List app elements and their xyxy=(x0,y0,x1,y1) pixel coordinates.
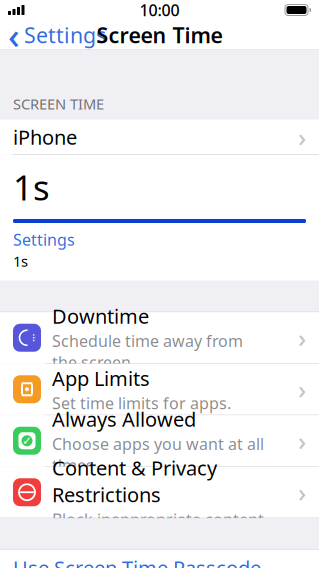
staticText: Block inappropriate content. xyxy=(52,509,268,530)
button[interactable]: Use Screen Time Passcode xyxy=(0,550,319,568)
button[interactable]: ✓ xyxy=(0,415,319,466)
button[interactable]: Downtime xyxy=(0,312,319,363)
staticText: Screen Time xyxy=(96,21,222,49)
staticText: iPhone xyxy=(13,124,77,150)
staticText: Content & Privacy Restrictions xyxy=(52,455,217,508)
staticText: Use Screen Time Passcode xyxy=(13,554,261,568)
staticText: ✓ xyxy=(22,434,32,447)
button[interactable]: ‹ xyxy=(0,7,106,63)
staticText: Set time limits for apps. xyxy=(52,392,231,414)
button[interactable]: App Limits xyxy=(0,364,319,415)
staticText: 1s xyxy=(13,251,28,271)
staticText: Downtime xyxy=(52,303,149,329)
staticText: › xyxy=(298,120,306,154)
staticText: Settings xyxy=(24,21,106,49)
staticText: 1s xyxy=(13,164,50,210)
staticText: Schedule time away from the screen. xyxy=(52,330,243,373)
staticText: 10:00 xyxy=(139,0,179,21)
staticText: › xyxy=(298,475,306,509)
staticText: Always Allowed xyxy=(52,406,196,432)
staticText: ‹ xyxy=(8,11,20,59)
staticText: › xyxy=(298,321,306,354)
button[interactable]: iPhone xyxy=(0,119,319,154)
staticText: App Limits xyxy=(52,365,150,391)
staticText: SCREEN TIME xyxy=(13,94,104,113)
staticText: › xyxy=(298,372,306,406)
staticText: Settings xyxy=(13,229,75,250)
staticText: › xyxy=(298,424,306,457)
button[interactable]: Content & Privacy Restrictions xyxy=(0,467,319,518)
staticText: Choose apps you want at all times. xyxy=(52,433,264,476)
